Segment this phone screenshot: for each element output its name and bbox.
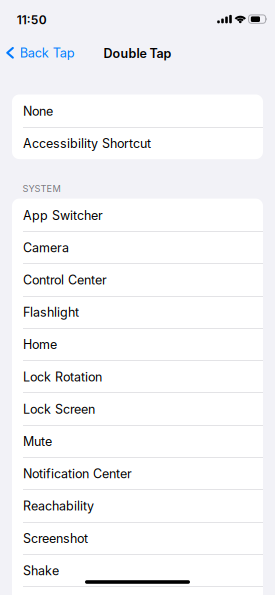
button[interactable]: None [12, 94, 263, 127]
staticText: SYSTEM [23, 183, 61, 194]
button[interactable]: Home [12, 328, 263, 360]
button[interactable]: Camera [12, 231, 263, 263]
staticText: Control Center [23, 272, 107, 287]
button[interactable]: Reachability [12, 489, 263, 522]
button[interactable]: Flashlight [12, 295, 263, 328]
staticText: Shake [23, 563, 59, 578]
button[interactable]: Shake [12, 554, 263, 586]
button[interactable]: Accessibility Shortcut [12, 127, 263, 159]
staticText: Reachability [23, 498, 94, 514]
button[interactable]: Notification Center [12, 457, 263, 489]
staticText: Lock Rotation [23, 369, 102, 384]
button[interactable]: Back [6, 44, 75, 62]
staticText: Home [23, 337, 57, 352]
staticText: Notification Center [23, 466, 132, 481]
button[interactable]: Control Center [12, 263, 263, 295]
button[interactable]: Lock Rotation [12, 360, 263, 392]
button[interactable]: Mute [12, 425, 263, 457]
button[interactable]: Screenshot [12, 522, 263, 554]
staticText: Back Tap [20, 45, 75, 61]
staticText: Camera [23, 240, 69, 255]
staticText: App Switcher [23, 208, 103, 223]
staticText: Accessibility Shortcut [23, 136, 151, 151]
staticText: Mute [23, 434, 52, 449]
staticText: Screenshot [23, 531, 88, 546]
staticText: Double Tap [103, 46, 171, 61]
staticText: 11:50 [17, 13, 47, 27]
staticText: Flashlight [23, 305, 79, 320]
button[interactable]: App Switcher [12, 199, 263, 231]
staticText: None [23, 104, 53, 119]
staticText: Lock Screen [23, 402, 95, 417]
button[interactable]: Lock Screen [12, 392, 263, 425]
